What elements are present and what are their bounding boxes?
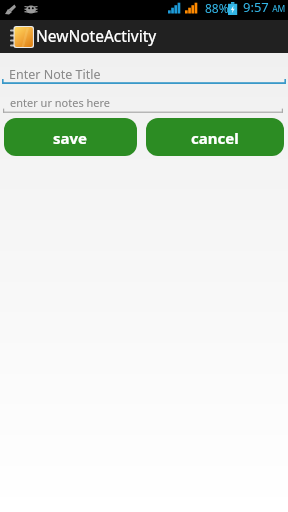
- staticText: save: [53, 128, 88, 148]
- staticText: 9:57 AM: [243, 0, 286, 16]
- staticText: NewNoteActivity: [36, 25, 157, 46]
- button[interactable]: cancel: [146, 118, 284, 156]
- staticText: enter ur notes here: [10, 95, 111, 110]
- button[interactable]: save: [4, 118, 137, 156]
- staticText: cancel: [191, 128, 239, 148]
- staticText: 88%: [205, 0, 229, 16]
- staticText: Enter Note Title: [9, 66, 101, 83]
